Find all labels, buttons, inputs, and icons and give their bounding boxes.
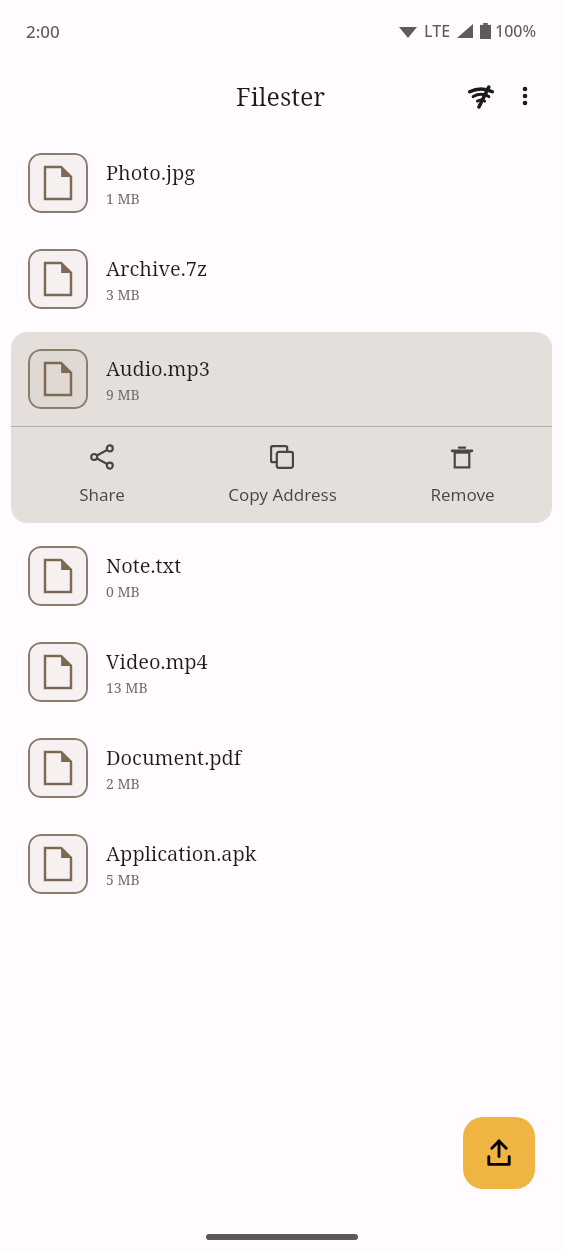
staticText: 9 MB (106, 385, 140, 404)
staticText: Filester (236, 79, 326, 113)
button[interactable]: Remove (372, 427, 552, 523)
staticText: Share (79, 483, 125, 506)
button[interactable]: Copy Address (192, 427, 372, 523)
staticText: Audio.mp3 (106, 355, 210, 382)
button[interactable]: Application.apk (0, 821, 563, 907)
button[interactable]: Note.txt (0, 533, 563, 619)
staticText: 5 MB (106, 870, 140, 889)
button[interactable]: Video.mp4 (0, 629, 563, 715)
button[interactable]: Network status (459, 74, 503, 118)
staticText: 2:00 (26, 20, 60, 43)
button[interactable]: More options (503, 74, 547, 118)
staticText: Document.pdf (106, 744, 242, 771)
staticText: Archive.7z (106, 255, 208, 282)
staticText: 0 MB (106, 582, 140, 601)
staticText: Note.txt (106, 552, 182, 579)
button[interactable]: Document.pdf (0, 725, 563, 811)
staticText: Photo.jpg (106, 159, 195, 186)
button[interactable]: Share (11, 427, 192, 523)
button[interactable]: Archive.7z (0, 236, 563, 322)
staticText: Remove (430, 483, 495, 506)
button[interactable]: Photo.jpg (0, 140, 563, 226)
staticText: Video.mp4 (106, 648, 208, 675)
staticText: Copy Address (228, 483, 337, 506)
button[interactable]: Audio.mp3 (11, 332, 552, 426)
staticText: 3 MB (106, 285, 140, 304)
staticText: 2 MB (106, 774, 140, 793)
staticText: 1 MB (106, 189, 140, 208)
staticText: 100% (495, 20, 537, 42)
staticText: 13 MB (106, 678, 148, 697)
staticText: LTE (424, 20, 451, 42)
button[interactable]: Upload file (463, 1117, 535, 1189)
staticText: Application.apk (106, 840, 257, 867)
